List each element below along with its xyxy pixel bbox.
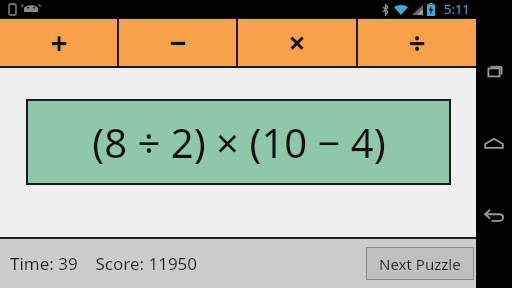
staticText: +: [50, 22, 68, 63]
button[interactable]: +: [0, 19, 117, 66]
staticText: Time: 39 Score: 11950: [10, 252, 198, 275]
button[interactable]: Next Puzzle: [367, 248, 473, 279]
staticText: 5:11: [444, 0, 470, 18]
button[interactable]: ÷: [358, 19, 476, 66]
staticText: Next Puzzle: [379, 254, 461, 274]
staticText: −: [169, 22, 187, 63]
button[interactable]: Back: [476, 192, 512, 240]
button[interactable]: Recents: [476, 48, 512, 96]
staticText: (8 ÷ 2) × (10 − 4): [92, 115, 386, 169]
button[interactable]: Home: [476, 120, 512, 168]
button[interactable]: ×: [238, 19, 356, 66]
staticText: ÷: [408, 22, 426, 63]
button[interactable]: −: [119, 19, 236, 66]
staticText: ×: [288, 22, 306, 63]
